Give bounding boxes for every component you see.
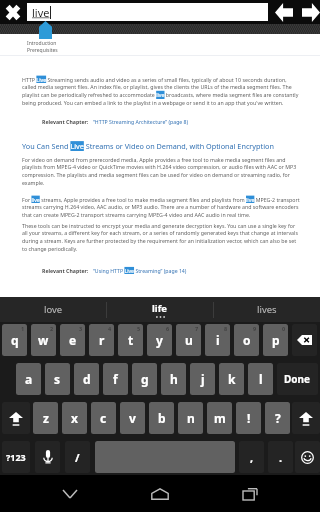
- button[interactable]: !: [236, 402, 261, 434]
- button[interactable]: m: [207, 402, 232, 434]
- staticText: b: [158, 410, 166, 426]
- button[interactable]: f: [103, 363, 128, 395]
- staticText: 6: [166, 325, 170, 332]
- staticText: c: [100, 410, 107, 426]
- staticText: /: [75, 450, 80, 465]
- staticText: “HTTP Streaming Architecture” (page 8): [93, 118, 189, 125]
- staticText: Prerequisites: [27, 47, 58, 54]
- button[interactable]: Backspace: [292, 324, 317, 356]
- staticText: ?123: [6, 451, 26, 463]
- button[interactable]: Voice input: [35, 441, 60, 473]
- staticText: For video on demand from prerecorded med…: [22, 156, 300, 187]
- button[interactable]: Shift: [2, 402, 30, 434]
- button[interactable]: ,: [239, 441, 264, 473]
- staticText: o: [243, 332, 251, 348]
- button[interactable]: .: [268, 441, 293, 473]
- button[interactable]: h: [161, 363, 186, 395]
- staticText: u: [185, 332, 193, 348]
- button[interactable]: k: [219, 363, 244, 395]
- staticText: q: [11, 332, 19, 348]
- staticText: live: [32, 5, 50, 20]
- staticText: i: [216, 332, 220, 348]
- button[interactable]: r: [89, 324, 114, 356]
- staticText: These tools can be instructed to encrypt…: [22, 222, 300, 253]
- button[interactable]: q: [2, 324, 27, 356]
- staticText: !: [247, 410, 251, 426]
- button[interactable]: Relevant Chapter:: [42, 118, 189, 125]
- button[interactable]: love: [0, 297, 106, 322]
- staticText: t: [128, 332, 134, 348]
- button[interactable]: Home: [115, 475, 205, 512]
- button[interactable]: Previous result: [273, 1, 295, 23]
- button[interactable]: ?: [265, 402, 290, 434]
- button[interactable]: z: [33, 402, 58, 434]
- button[interactable]: g: [132, 363, 157, 395]
- staticText: e: [69, 332, 77, 348]
- button[interactable]: t: [118, 324, 143, 356]
- staticText: lives: [257, 303, 277, 316]
- staticText: 2: [50, 325, 54, 332]
- staticText: 1: [21, 325, 25, 332]
- button[interactable]: s: [45, 363, 70, 395]
- button[interactable]: w: [31, 324, 56, 356]
- button[interactable]: lives: [214, 297, 320, 322]
- button[interactable]: a: [16, 363, 41, 395]
- button[interactable]: Close search: [0, 0, 25, 24]
- button[interactable]: Next result: [301, 1, 320, 23]
- button[interactable]: ?123: [2, 441, 30, 473]
- button[interactable]: Emoji: [295, 441, 320, 473]
- button[interactable]: /: [65, 441, 90, 473]
- staticText: k: [228, 371, 236, 387]
- staticText: You Can Send Live Streams or Video on De…: [22, 141, 274, 151]
- staticText: love: [44, 303, 63, 316]
- staticText: Relevant Chapter:: [42, 118, 89, 125]
- staticText: x: [71, 410, 78, 426]
- button[interactable]: e: [60, 324, 85, 356]
- staticText: For live streams, Apple provides a free …: [22, 196, 300, 219]
- button[interactable]: Relevant Chapter:: [42, 267, 187, 274]
- staticText: y: [156, 332, 163, 348]
- staticText: g: [141, 371, 149, 387]
- staticText: 9: [253, 325, 257, 332]
- button[interactable]: o: [234, 324, 259, 356]
- button[interactable]: b: [149, 402, 174, 434]
- button[interactable]: c: [91, 402, 116, 434]
- button[interactable]: x: [62, 402, 87, 434]
- staticText: ,: [250, 450, 254, 465]
- button[interactable]: p: [263, 324, 288, 356]
- button[interactable]: i: [205, 324, 230, 356]
- button[interactable]: v: [120, 402, 145, 434]
- staticText: l: [259, 371, 263, 387]
- staticText: s: [54, 371, 61, 387]
- button[interactable]: j: [190, 363, 215, 395]
- staticText: 5: [137, 325, 141, 332]
- button[interactable]: u: [176, 324, 201, 356]
- button[interactable]: Back: [25, 475, 115, 512]
- staticText: v: [129, 410, 136, 426]
- button[interactable]: Shift: [292, 402, 320, 434]
- button[interactable]: live: [27, 3, 268, 21]
- staticText: f: [113, 371, 118, 387]
- staticText: r: [99, 332, 105, 348]
- button[interactable]: l: [248, 363, 273, 395]
- staticText: 8: [224, 325, 228, 332]
- staticText: 4: [108, 325, 112, 332]
- staticText: a: [25, 371, 33, 387]
- staticText: j: [201, 371, 205, 387]
- button[interactable]: n: [178, 402, 203, 434]
- button[interactable]: y: [147, 324, 172, 356]
- staticText: w: [38, 332, 49, 348]
- button[interactable]: Done: [277, 363, 318, 395]
- button[interactable]: d: [74, 363, 99, 395]
- button[interactable]: life: [107, 297, 213, 322]
- staticText: .: [279, 450, 283, 465]
- staticText: 7: [195, 325, 199, 332]
- button[interactable]: Recent apps: [205, 475, 295, 512]
- staticText: z: [43, 410, 49, 426]
- staticText: Introduction: [27, 40, 57, 47]
- staticText: HTTP Live Streaming sends audio and vide…: [22, 76, 300, 107]
- staticText: 0: [282, 325, 286, 332]
- staticText: p: [272, 332, 280, 348]
- staticText: d: [83, 371, 91, 387]
